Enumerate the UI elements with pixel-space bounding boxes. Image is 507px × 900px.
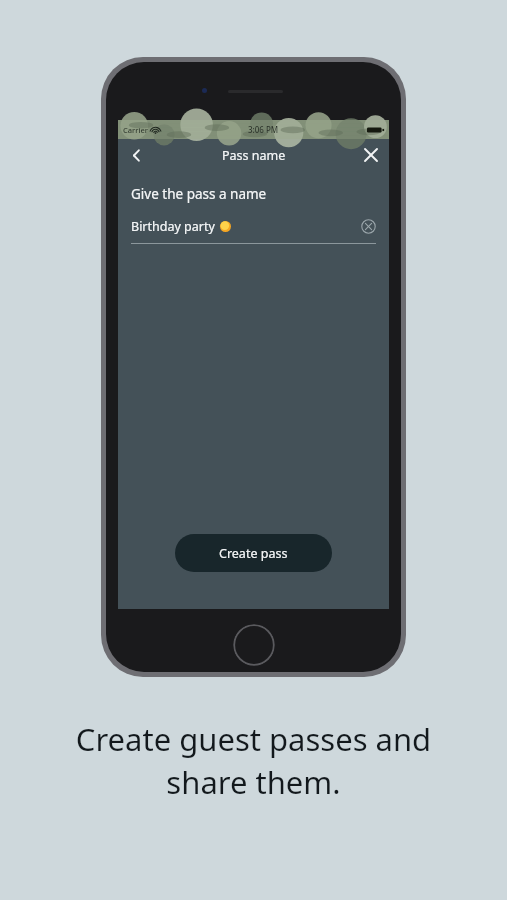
staticText: Create pass — [219, 545, 288, 562]
staticText: Carrier — [123, 125, 148, 135]
button[interactable]: Close — [361, 145, 381, 165]
button[interactable]: Home — [233, 624, 275, 666]
staticText: Create guest passes and share them. — [18, 718, 489, 803]
staticText: 3:06 PM — [248, 124, 279, 135]
staticText: Give the pass a name — [131, 185, 267, 203]
staticText: Birthday party — [131, 218, 215, 235]
button[interactable]: Create pass — [175, 534, 332, 572]
button[interactable]: Birthday party — [131, 218, 376, 235]
button[interactable]: Back — [126, 145, 146, 165]
button[interactable]: Clear text — [361, 219, 376, 234]
staticText: Pass name — [222, 147, 286, 164]
